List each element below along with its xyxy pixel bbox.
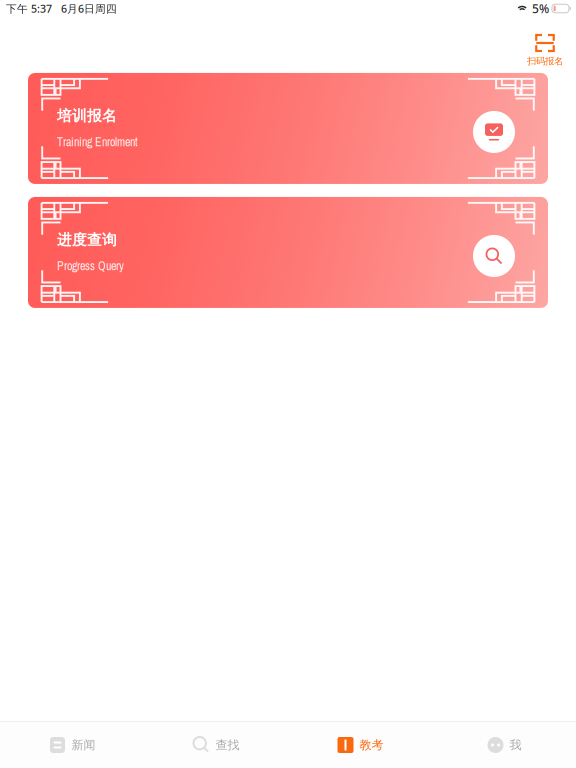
button[interactable]: 教考	[288, 722, 432, 768]
button[interactable]: 培训报名	[28, 73, 548, 184]
staticText: 培训报名	[57, 107, 117, 125]
staticText: 教考	[359, 738, 383, 752]
button[interactable]: 我	[432, 722, 576, 768]
staticText: 新闻	[71, 738, 95, 752]
staticText: 下午 5:37 6月6日周四	[6, 1, 117, 16]
staticText: Progress Query	[57, 258, 124, 274]
staticText: 5%	[532, 0, 549, 16]
staticText: 进度查询	[57, 231, 117, 249]
staticText: 查找	[215, 738, 239, 752]
button[interactable]: 进度查询	[28, 197, 548, 308]
button[interactable]: 新闻	[0, 722, 144, 768]
button[interactable]: 扫码报名	[511, 17, 576, 71]
button[interactable]: 查找	[144, 722, 288, 768]
staticText: 我	[509, 738, 521, 752]
staticText: Training Enrolment	[57, 134, 138, 150]
staticText: 扫码报名	[527, 55, 563, 67]
